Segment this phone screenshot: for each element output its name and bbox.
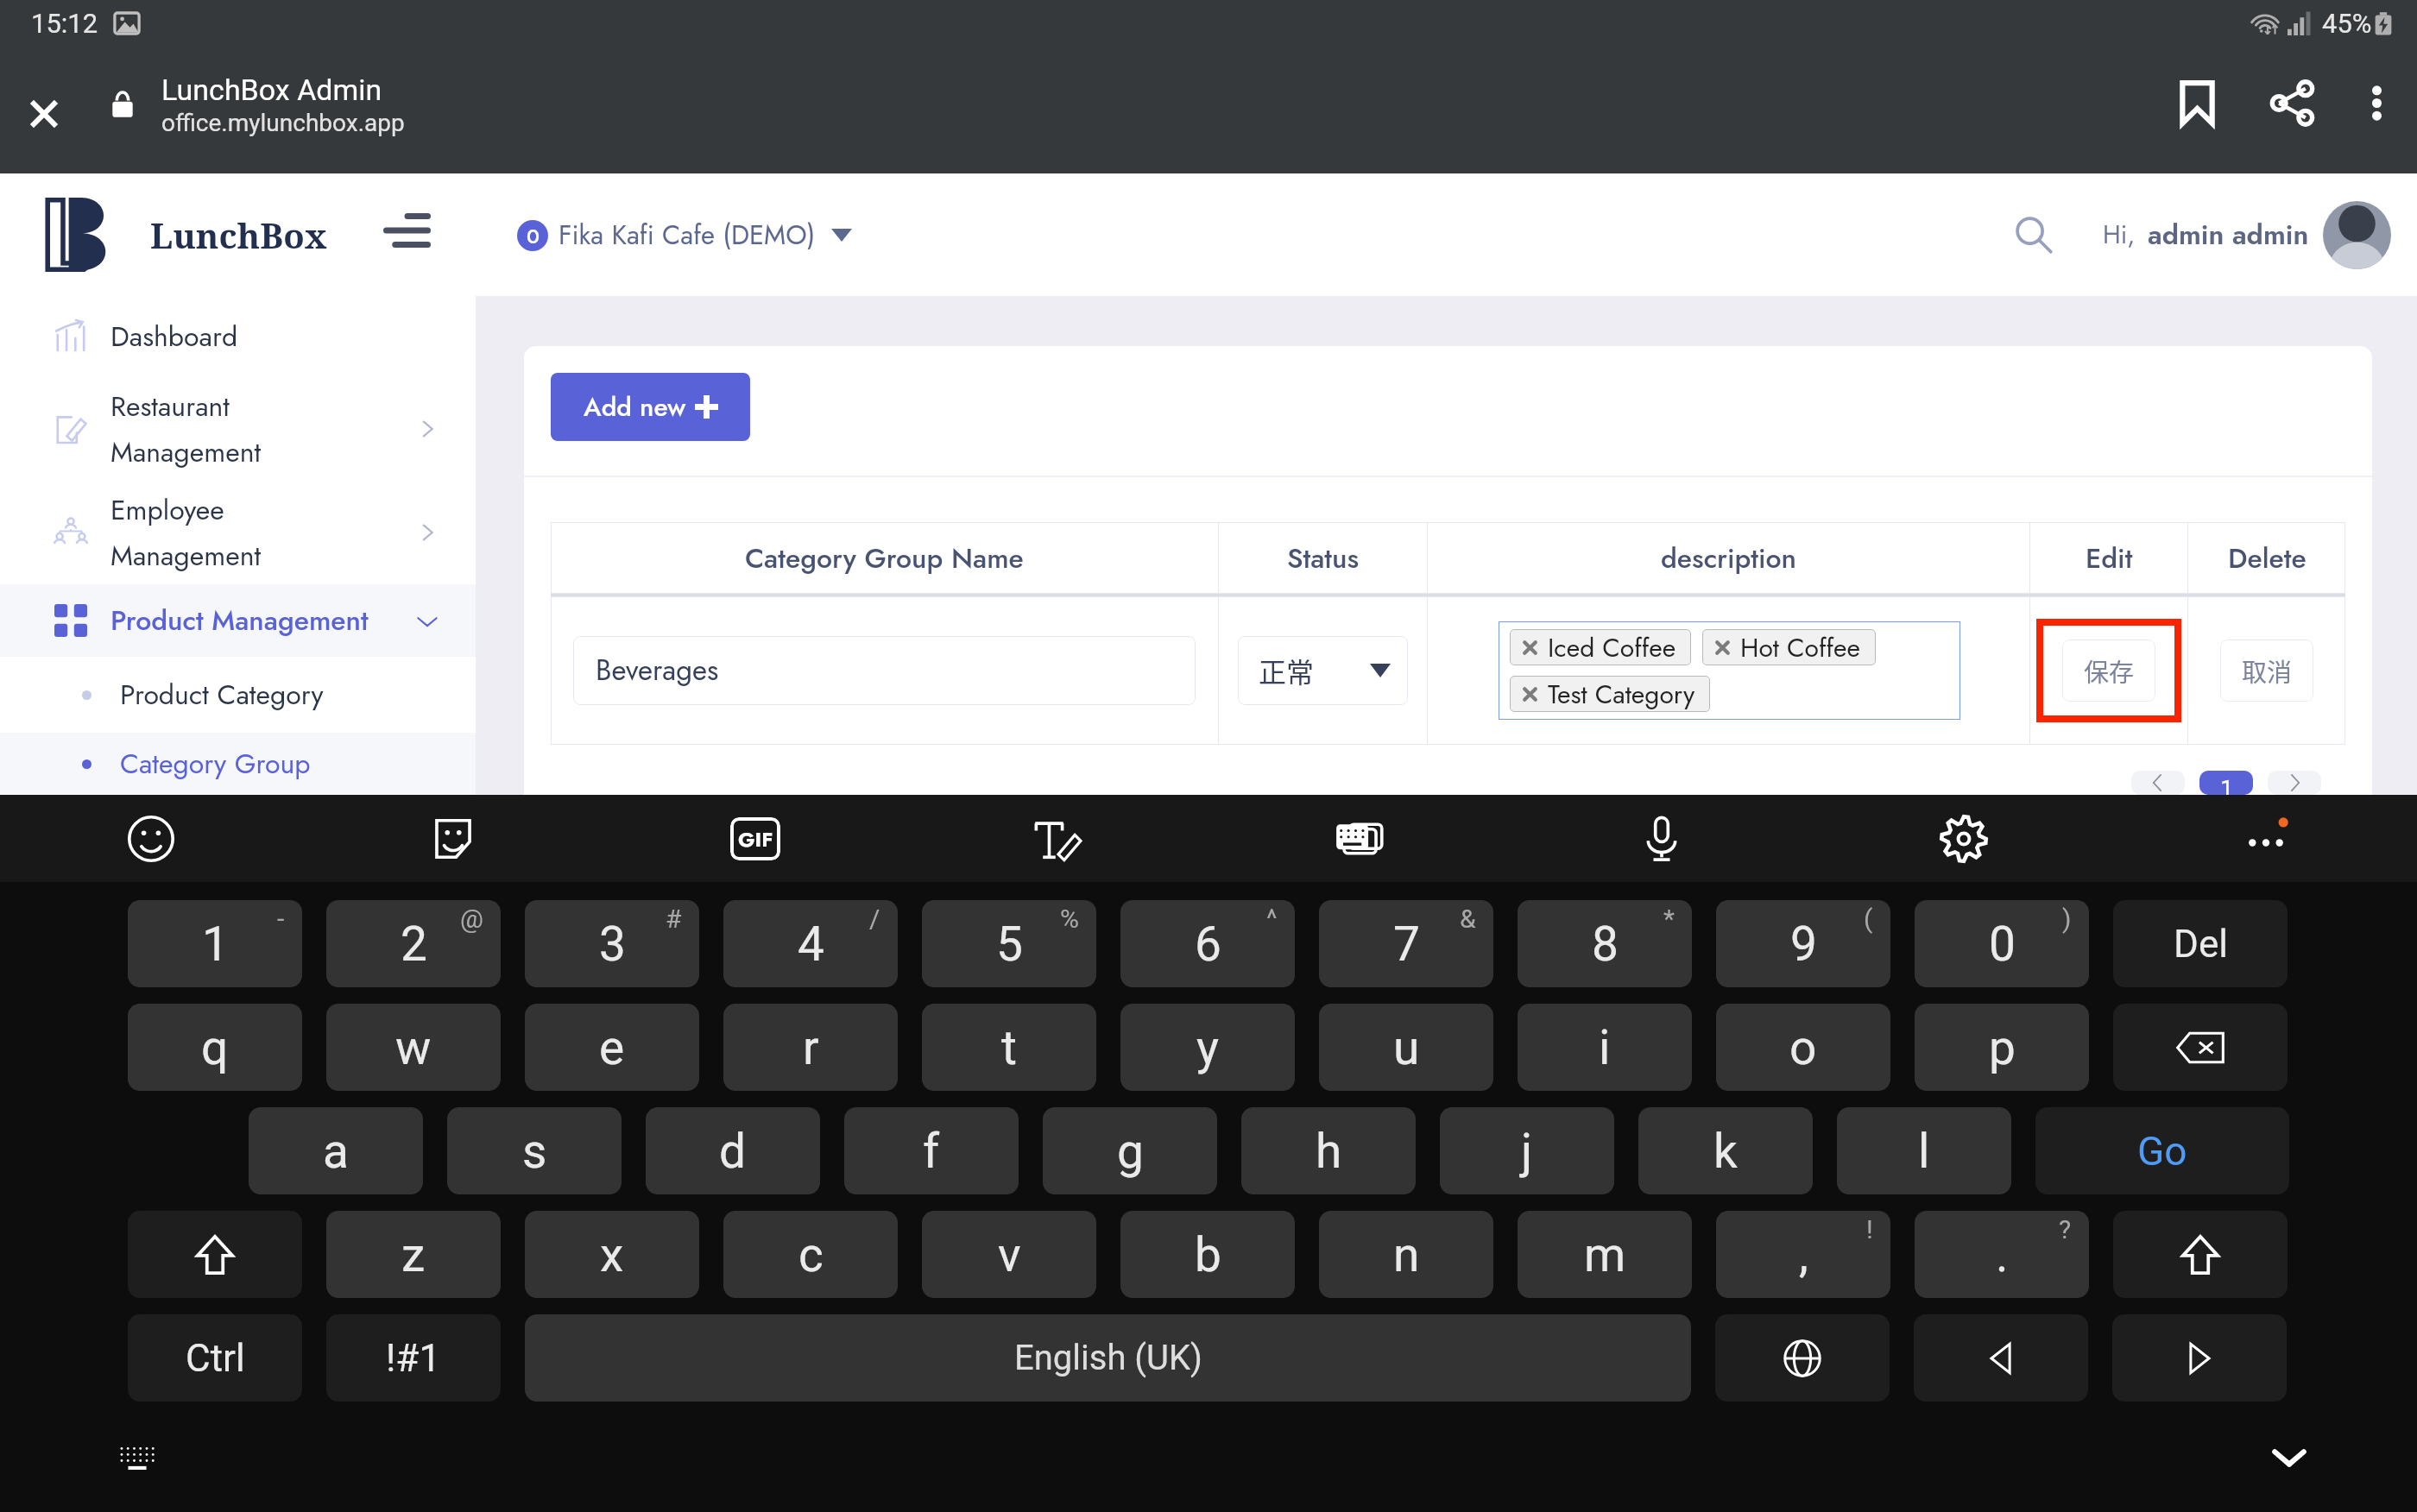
button[interactable]: Stickers	[302, 795, 604, 882]
button[interactable]: n	[1319, 1211, 1493, 1298]
button[interactable]: Backspace	[2113, 1004, 2288, 1091]
button[interactable]: Iced Coffee	[1510, 629, 1960, 712]
button[interactable]: c	[723, 1211, 898, 1298]
button[interactable]: o	[1716, 1004, 1890, 1091]
button[interactable]: z	[326, 1211, 501, 1298]
staticText: Hi,	[2103, 217, 2136, 253]
button[interactable]: Iced Coffee	[1510, 629, 1691, 665]
staticText: 取消	[2242, 652, 2293, 689]
button[interactable]: j	[1440, 1107, 1614, 1194]
button[interactable]: 正常	[1238, 636, 1408, 705]
button[interactable]: b	[1120, 1211, 1295, 1298]
button[interactable]: x	[525, 1211, 699, 1298]
button[interactable]: f	[844, 1107, 1019, 1194]
staticText: 1	[202, 917, 229, 972]
button[interactable]: u	[1319, 1004, 1493, 1091]
button[interactable]: Employee Management	[0, 481, 476, 584]
button[interactable]: 0	[1915, 900, 2089, 987]
button[interactable]: Product Category	[0, 657, 476, 733]
button[interactable]: i	[1518, 1004, 1692, 1091]
button[interactable]: Emoji	[0, 795, 302, 882]
staticText: Restaurant Management	[110, 387, 262, 472]
button[interactable]: More options	[2336, 54, 2417, 173]
button[interactable]: p	[1915, 1004, 2089, 1091]
button[interactable]: Text edit	[906, 795, 1208, 882]
button[interactable]: Go	[2035, 1107, 2289, 1194]
staticText: a	[323, 1124, 349, 1179]
button[interactable]: 2	[326, 900, 501, 987]
staticText: w	[395, 1020, 432, 1075]
button[interactable]: Next page	[2268, 771, 2321, 795]
button[interactable]: Keyboard modes	[1208, 795, 1511, 882]
button[interactable]: GIF	[604, 795, 906, 882]
button[interactable]: 9	[1716, 900, 1890, 987]
staticText: s	[522, 1124, 547, 1179]
button[interactable]: Previous page	[2131, 771, 2185, 795]
button[interactable]: g	[1043, 1107, 1217, 1194]
staticText: #	[666, 904, 682, 934]
staticText: Beverages	[596, 650, 719, 691]
button[interactable]: Add new	[551, 373, 750, 441]
button[interactable]: 3	[525, 900, 699, 987]
button[interactable]: Move cursor left	[1914, 1314, 2088, 1402]
button[interactable]: Shift	[2113, 1211, 2288, 1298]
button[interactable]: Beverages	[573, 636, 1196, 705]
button[interactable]: v	[922, 1211, 1096, 1298]
button[interactable]: d	[646, 1107, 820, 1194]
button[interactable]: 0	[517, 207, 852, 263]
button[interactable]: Share	[2248, 54, 2336, 173]
button[interactable]: y	[1120, 1004, 1295, 1091]
button[interactable]: Restaurant Management	[0, 377, 476, 481]
button[interactable]: Change language	[1715, 1314, 1890, 1402]
button[interactable]: 5	[922, 900, 1096, 987]
button[interactable]: Hot Coffee	[1702, 629, 1876, 665]
button[interactable]: English (UK)	[525, 1314, 1691, 1402]
button[interactable]: Shift	[128, 1211, 302, 1298]
button[interactable]: Dashboard	[0, 296, 476, 377]
button[interactable]: 保存	[2062, 639, 2155, 702]
button[interactable]	[2323, 201, 2391, 269]
button[interactable]: Product Management	[0, 584, 476, 657]
button[interactable]: a	[249, 1107, 423, 1194]
button[interactable]: Close	[0, 54, 88, 173]
button[interactable]: Page 1	[2199, 771, 2253, 795]
button[interactable]: 8	[1518, 900, 1692, 987]
staticText: ?	[2059, 1214, 2072, 1244]
button[interactable]: m	[1518, 1211, 1692, 1298]
button[interactable]: 7	[1319, 900, 1493, 987]
button[interactable]: w	[326, 1004, 501, 1091]
button[interactable]: Category Group	[0, 733, 476, 795]
button[interactable]: Test Category	[1510, 676, 1710, 712]
button[interactable]: s	[447, 1107, 622, 1194]
button[interactable]: r	[723, 1004, 898, 1091]
button[interactable]: !#1	[326, 1314, 501, 1402]
button[interactable]: ,	[1716, 1211, 1890, 1298]
button[interactable]: t	[922, 1004, 1096, 1091]
button[interactable]: q	[128, 1004, 302, 1091]
button[interactable]: Del	[2113, 900, 2288, 987]
button[interactable]: Keyboard layout	[110, 1430, 164, 1484]
button[interactable]: e	[525, 1004, 699, 1091]
staticText: Edit	[2086, 539, 2133, 578]
button[interactable]: Settings	[1813, 795, 2115, 882]
button[interactable]: Hide keyboard	[2255, 1422, 2324, 1491]
staticText: Del	[2174, 922, 2228, 967]
button[interactable]: Ctrl	[128, 1314, 302, 1402]
button[interactable]: Bookmark	[2147, 54, 2248, 173]
staticText: office.mylunchbox.app	[161, 109, 405, 137]
button[interactable]: h	[1241, 1107, 1416, 1194]
button[interactable]: 6	[1120, 900, 1295, 987]
button[interactable]: l	[1837, 1107, 2011, 1194]
button[interactable]: 1	[128, 900, 302, 987]
button[interactable]: More	[2115, 795, 2417, 882]
button[interactable]: Move cursor right	[2112, 1314, 2287, 1402]
button[interactable]: Voice input	[1511, 795, 1813, 882]
staticText: GIF	[738, 824, 773, 854]
button[interactable]: .	[1915, 1211, 2089, 1298]
button[interactable]: k	[1638, 1107, 1813, 1194]
button[interactable]: Menu	[383, 209, 431, 261]
button[interactable]: 4	[723, 900, 898, 987]
staticText: ,	[1799, 1227, 1808, 1282]
button[interactable]: Search	[1994, 195, 2073, 274]
button[interactable]: 取消	[2220, 639, 2313, 702]
